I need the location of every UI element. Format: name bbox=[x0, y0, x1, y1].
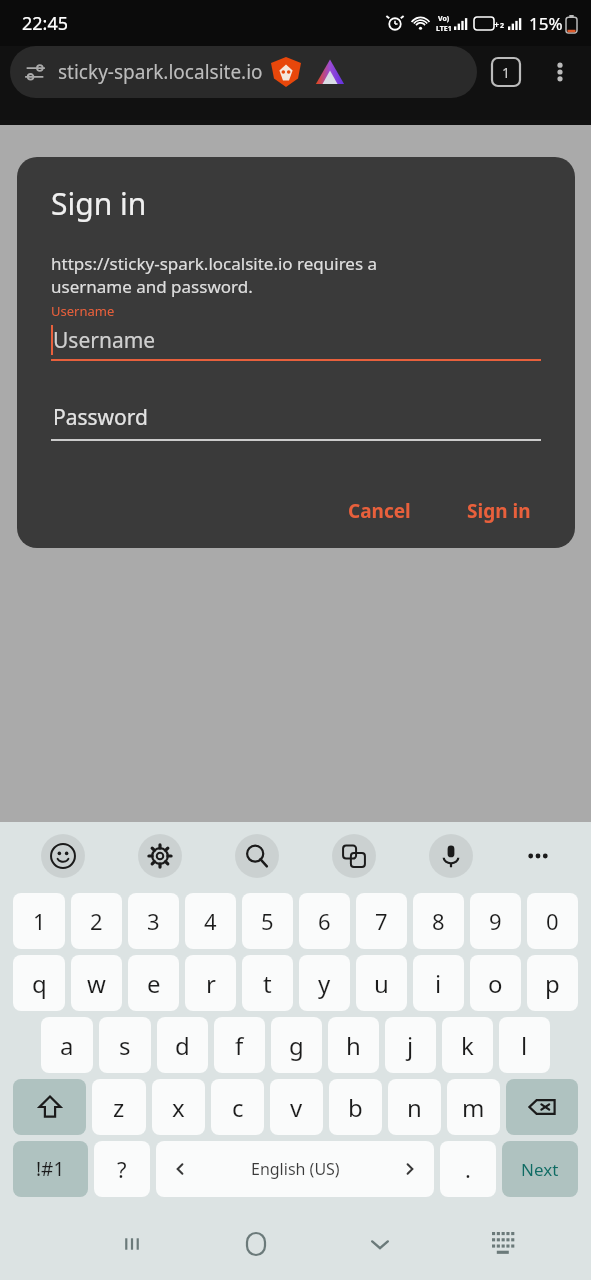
button[interactable]: Tabs bbox=[491, 57, 521, 87]
button[interactable]: Translate bbox=[305, 822, 402, 890]
button[interactable]: English (US) bbox=[156, 1141, 434, 1197]
button[interactable]: ? bbox=[94, 1141, 150, 1197]
button[interactable]: Voice input bbox=[402, 822, 499, 890]
staticText: 22:45 bbox=[22, 11, 69, 36]
staticText: 15% bbox=[529, 12, 563, 35]
button[interactable]: Hide keyboard bbox=[318, 1208, 442, 1280]
button[interactable]: Cancel bbox=[338, 492, 421, 530]
button[interactable]: 1 bbox=[13, 893, 65, 949]
staticText: q bbox=[32, 967, 47, 1000]
button[interactable]: Home bbox=[194, 1208, 318, 1280]
button[interactable]: Brave rewards bbox=[315, 57, 345, 87]
staticText: . bbox=[465, 1154, 471, 1184]
button[interactable]: p bbox=[527, 955, 578, 1011]
staticText: d bbox=[175, 1029, 190, 1062]
staticText: 5 bbox=[261, 906, 274, 936]
staticText: Sign in bbox=[467, 498, 531, 524]
button[interactable]: s bbox=[99, 1017, 151, 1073]
button[interactable]: k bbox=[442, 1017, 493, 1073]
button[interactable]: z bbox=[92, 1079, 146, 1135]
staticText: Next bbox=[521, 1158, 559, 1181]
button[interactable]: 9 bbox=[470, 893, 521, 949]
button[interactable]: . bbox=[440, 1141, 496, 1197]
staticText: n bbox=[407, 1091, 422, 1124]
button[interactable]: q bbox=[13, 955, 65, 1011]
button[interactable]: l bbox=[499, 1017, 550, 1073]
button[interactable]: e bbox=[128, 955, 179, 1011]
staticText: g bbox=[289, 1029, 304, 1062]
button[interactable]: Emoji bbox=[14, 822, 111, 890]
staticText: LTE1 bbox=[436, 24, 452, 34]
button[interactable]: Site settings bbox=[10, 46, 477, 98]
button[interactable]: j bbox=[385, 1017, 436, 1073]
staticText: m bbox=[462, 1091, 485, 1124]
button[interactable]: h bbox=[328, 1017, 379, 1073]
button[interactable]: 4 bbox=[185, 893, 236, 949]
button[interactable]: i bbox=[413, 955, 464, 1011]
button[interactable]: Recents bbox=[69, 1208, 194, 1280]
button[interactable]: Brave shields bbox=[271, 57, 301, 87]
staticText: z bbox=[113, 1091, 125, 1124]
button[interactable]: !#1 bbox=[13, 1141, 88, 1197]
staticText: 3 bbox=[147, 906, 160, 936]
button[interactable]: More options bbox=[543, 55, 577, 89]
staticText: b bbox=[348, 1091, 363, 1124]
staticText: Vo) bbox=[438, 14, 450, 24]
button[interactable]: y bbox=[299, 955, 350, 1011]
button[interactable]: Backspace bbox=[506, 1079, 578, 1135]
button[interactable]: n bbox=[388, 1079, 441, 1135]
button[interactable]: Settings bbox=[111, 822, 208, 890]
button[interactable]: 2 bbox=[71, 893, 122, 949]
staticText: l bbox=[521, 1029, 528, 1062]
button[interactable]: u bbox=[356, 955, 407, 1011]
button[interactable]: 5 bbox=[242, 893, 293, 949]
staticText: 1 bbox=[502, 63, 511, 82]
button[interactable]: 6 bbox=[299, 893, 350, 949]
staticText: t bbox=[263, 967, 272, 1000]
staticText: 8 bbox=[432, 906, 445, 936]
staticText: ? bbox=[117, 1154, 127, 1184]
staticText: Username bbox=[53, 326, 156, 355]
button[interactable]: 8 bbox=[413, 893, 464, 949]
staticText: x bbox=[172, 1091, 185, 1124]
button[interactable]: 3 bbox=[128, 893, 179, 949]
button[interactable]: w bbox=[71, 955, 122, 1011]
staticText: f bbox=[235, 1029, 244, 1062]
staticText: v bbox=[290, 1091, 303, 1124]
staticText: Username bbox=[51, 302, 115, 320]
staticText: j bbox=[407, 1029, 414, 1062]
button[interactable]: r bbox=[185, 955, 236, 1011]
button[interactable]: Search bbox=[208, 822, 305, 890]
staticText: 0 bbox=[546, 906, 559, 936]
staticText: h bbox=[346, 1029, 361, 1062]
other: Site settings bbox=[24, 61, 46, 83]
button[interactable]: Keyboard layout bbox=[442, 1208, 566, 1280]
staticText: 4 bbox=[204, 906, 217, 936]
staticText: https://sticky-spark.localsite.io requir… bbox=[51, 252, 378, 298]
staticText: 6 bbox=[318, 906, 331, 936]
button[interactable]: o bbox=[470, 955, 521, 1011]
button[interactable]: g bbox=[271, 1017, 322, 1073]
button[interactable]: 0 bbox=[527, 893, 578, 949]
button[interactable]: x bbox=[152, 1079, 205, 1135]
button[interactable]: d bbox=[157, 1017, 208, 1073]
staticText: s bbox=[119, 1029, 131, 1062]
button[interactable]: 7 bbox=[356, 893, 407, 949]
button[interactable]: b bbox=[329, 1079, 382, 1135]
button[interactable]: c bbox=[211, 1079, 264, 1135]
staticText: + bbox=[494, 18, 500, 30]
button[interactable]: Sign in bbox=[457, 492, 541, 530]
staticText: 2 bbox=[500, 21, 505, 31]
button[interactable]: a bbox=[41, 1017, 93, 1073]
staticText: k bbox=[461, 1029, 474, 1062]
staticText: 1 bbox=[33, 906, 46, 936]
staticText: !#1 bbox=[36, 1156, 65, 1182]
button[interactable]: v bbox=[270, 1079, 323, 1135]
button[interactable]: More bbox=[499, 822, 577, 890]
staticText: a bbox=[60, 1029, 74, 1062]
button[interactable]: f bbox=[214, 1017, 265, 1073]
button[interactable]: t bbox=[242, 955, 293, 1011]
button[interactable]: Shift bbox=[13, 1079, 86, 1135]
button[interactable]: m bbox=[447, 1079, 500, 1135]
button[interactable]: Next bbox=[502, 1141, 578, 1197]
